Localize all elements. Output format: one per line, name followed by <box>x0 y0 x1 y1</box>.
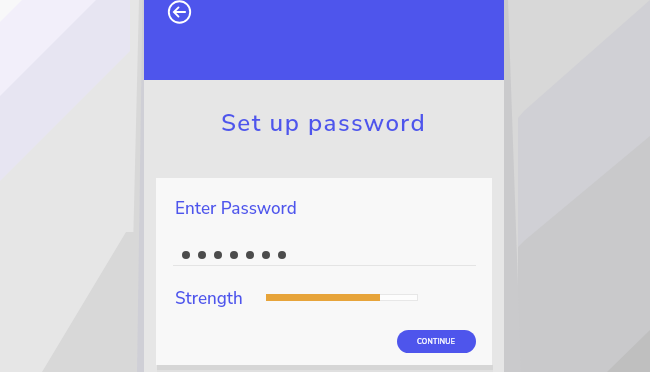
staticText: Enter Password <box>175 197 297 220</box>
button[interactable]: Back <box>168 0 192 24</box>
staticText: CONTINUE <box>417 337 456 347</box>
button[interactable]: CONTINUE <box>397 330 476 353</box>
staticText: Strength <box>175 287 243 310</box>
staticText: Set up password <box>221 107 427 140</box>
